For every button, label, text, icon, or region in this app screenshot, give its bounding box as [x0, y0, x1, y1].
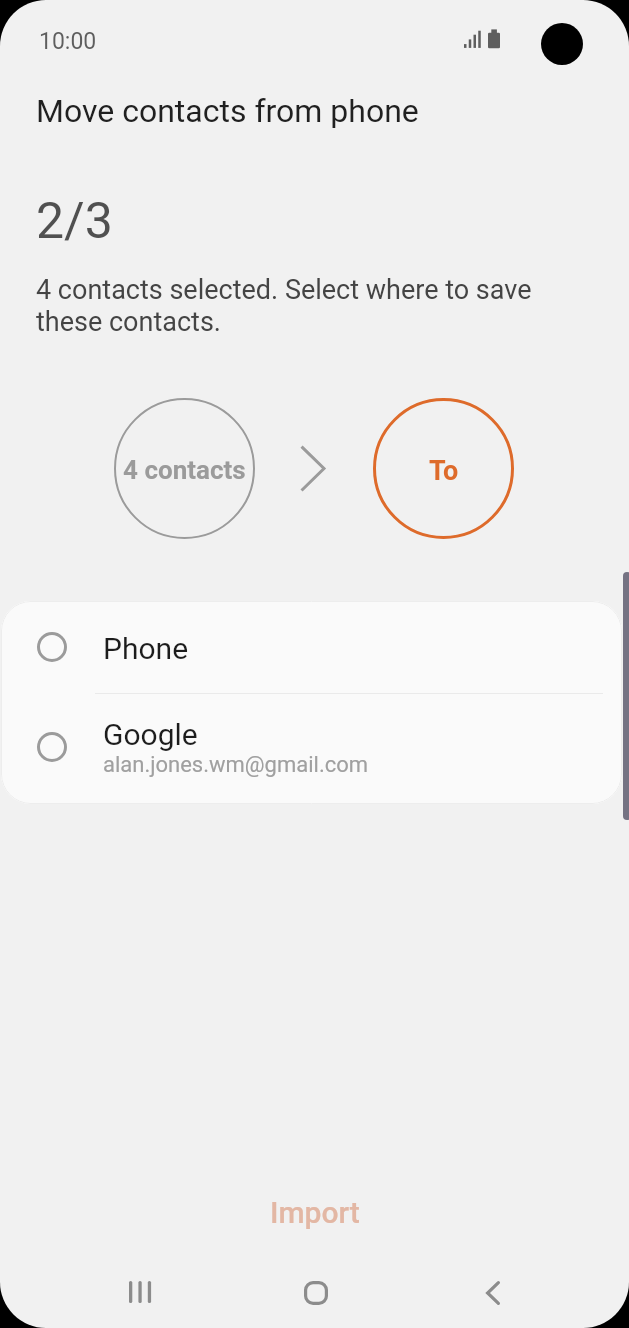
staticText: 4 contacts selected. Select where to sav… — [36, 274, 561, 337]
button[interactable]: Home — [287, 1264, 345, 1322]
button[interactable]: Import — [0, 1176, 629, 1248]
staticText: To — [429, 455, 459, 487]
staticText: 4 contacts — [123, 455, 246, 485]
staticText: Phone — [103, 631, 189, 666]
staticText: alan.jones.wm@gmail.com — [103, 752, 369, 778]
button[interactable]: Recent apps — [111, 1263, 169, 1321]
button[interactable]: Phone — [1, 601, 622, 693]
button[interactable]: Back — [464, 1264, 522, 1322]
staticText: Move contacts from phone — [36, 92, 419, 130]
staticText: 10:00 — [39, 28, 97, 55]
button[interactable]: Google — [1, 694, 622, 804]
staticText: Import — [270, 1195, 360, 1230]
staticText: 2/3 — [36, 192, 113, 251]
staticText: Google — [103, 717, 198, 752]
